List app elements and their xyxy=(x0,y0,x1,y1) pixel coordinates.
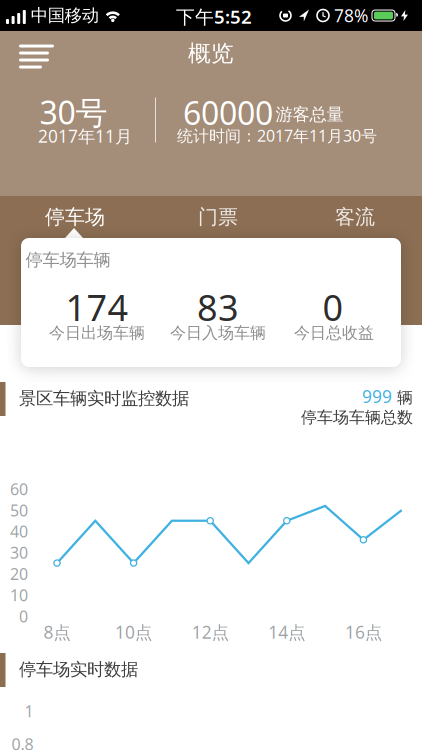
staticText: 20 xyxy=(10,563,28,584)
staticText: 统计时间：2017年11月30号 xyxy=(177,125,377,146)
staticText: 83 xyxy=(197,283,239,331)
staticText: 辆 xyxy=(397,388,413,407)
staticText: 1 xyxy=(24,700,33,722)
staticText: 中国移动 xyxy=(31,5,99,26)
staticText: 停车场车辆总数 xyxy=(301,408,413,427)
staticText: 12点 xyxy=(192,620,229,643)
staticText: 景区车辆实时监控数据 xyxy=(19,388,189,409)
staticText: 14点 xyxy=(268,620,305,643)
staticText: 40 xyxy=(10,521,28,542)
staticText: 30号 xyxy=(39,91,107,133)
staticText: 174 xyxy=(65,283,128,331)
staticText: 概览 xyxy=(188,40,234,67)
staticText: 10 xyxy=(10,584,28,606)
staticText: 0 xyxy=(19,606,28,627)
staticText: 游客总量 xyxy=(275,104,343,125)
staticText: 8点 xyxy=(43,620,70,643)
staticText: 今日出场车辆 xyxy=(49,323,145,343)
staticText: 999 xyxy=(362,385,392,408)
staticText: 今日总收益 xyxy=(294,323,374,343)
staticText: 30 xyxy=(10,542,28,563)
staticText: 下午5:52 xyxy=(176,4,252,29)
staticText: 60 xyxy=(10,478,28,500)
staticText: 10点 xyxy=(115,620,152,643)
staticText: 今日入场车辆 xyxy=(170,323,266,343)
button[interactable]: 门票 xyxy=(153,196,283,238)
staticText: 0 xyxy=(322,283,343,331)
staticText: 2017年11月 xyxy=(38,124,132,147)
staticText: 78% xyxy=(334,4,368,27)
staticText: 门票 xyxy=(198,205,238,229)
button[interactable]: 客流 xyxy=(290,196,420,238)
staticText: 50 xyxy=(10,500,28,521)
button[interactable]: 停车场 xyxy=(10,196,140,238)
staticText: 停车场实时数据 xyxy=(19,659,138,680)
staticText: 停车场 xyxy=(45,205,105,229)
button[interactable]: 菜单 xyxy=(0,31,54,75)
staticText: 16点 xyxy=(345,620,382,643)
staticText: 停车场车辆 xyxy=(25,249,110,271)
staticText: 客流 xyxy=(335,205,375,229)
staticText: 60000 xyxy=(183,91,273,134)
staticText: 0.8 xyxy=(11,733,33,750)
